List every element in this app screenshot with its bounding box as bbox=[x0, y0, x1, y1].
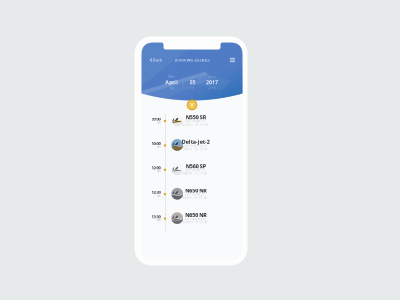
staticText: BOOKING DETAILS bbox=[174, 57, 209, 63]
staticText: 04 bbox=[190, 75, 194, 78]
staticText: 12:00 bbox=[152, 165, 161, 170]
staticText: Light business jet bbox=[182, 144, 207, 147]
staticText: 06 bbox=[190, 86, 194, 90]
staticText: 12:30 bbox=[152, 189, 161, 195]
staticText: April bbox=[165, 79, 178, 86]
staticText: N650 NR bbox=[185, 211, 206, 218]
staticText: Light aircraft jet bbox=[184, 193, 205, 196]
staticText: am bbox=[157, 145, 160, 148]
staticText: 13:30 bbox=[152, 214, 161, 219]
staticText: Vienna 1h 55 alt bbox=[182, 220, 207, 224]
staticText: 2018 bbox=[208, 86, 216, 90]
staticText: 2016 bbox=[208, 75, 216, 78]
staticText: March bbox=[168, 75, 175, 78]
staticText: 2017 bbox=[206, 79, 218, 86]
staticText: London 4h 56 alt bbox=[182, 123, 208, 126]
staticText: am bbox=[157, 218, 160, 222]
staticText: 05 bbox=[189, 79, 195, 86]
staticText: N560 SP bbox=[186, 163, 206, 170]
staticText: Back bbox=[153, 57, 162, 63]
staticText: am bbox=[157, 169, 160, 173]
staticText: am bbox=[157, 121, 160, 124]
staticText: May bbox=[170, 86, 174, 90]
staticText: Light aircraft jet bbox=[184, 168, 205, 172]
staticText: 10:00 bbox=[152, 141, 161, 146]
staticText: Delta-jet-2 bbox=[182, 138, 210, 145]
staticText: Dublin 3h 20 alt bbox=[182, 147, 207, 151]
button[interactable]: Menu bbox=[228, 56, 237, 64]
staticText: am bbox=[157, 194, 160, 197]
staticText: Madrid 5h 10 alt bbox=[183, 172, 207, 175]
staticText: 09:00 bbox=[152, 116, 161, 122]
staticText: N550 SR bbox=[186, 114, 206, 121]
staticText: Light aircraft jet bbox=[184, 217, 205, 221]
staticText: Light aircraft jet bbox=[184, 119, 205, 123]
staticText: N650 NR bbox=[185, 187, 206, 194]
staticText: Berlin 2h 40 alt bbox=[183, 196, 207, 200]
button[interactable]: Back bbox=[148, 55, 164, 65]
